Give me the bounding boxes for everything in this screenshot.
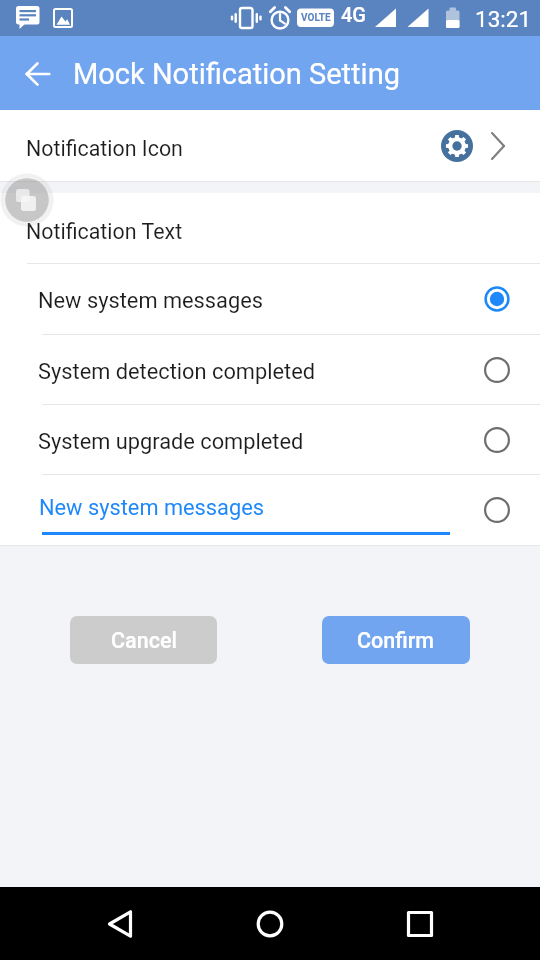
staticText: Notification Text bbox=[26, 219, 183, 244]
staticText: Confirm bbox=[357, 628, 435, 653]
button[interactable]: Home bbox=[240, 894, 300, 954]
button[interactable]: Floating assistant bbox=[0, 144, 83, 256]
button[interactable]: New system messages bbox=[0, 475, 540, 545]
staticText: Cancel bbox=[111, 628, 177, 653]
staticText: Notification Icon bbox=[26, 136, 183, 161]
button[interactable]: System detection completed bbox=[0, 335, 540, 404]
button[interactable]: Cancel bbox=[70, 616, 217, 664]
button[interactable]: Recent apps bbox=[390, 894, 450, 954]
staticText: System upgrade completed bbox=[38, 429, 304, 455]
staticText: 4G bbox=[341, 3, 366, 26]
button[interactable]: Confirm bbox=[322, 616, 470, 664]
button[interactable]: System upgrade completed bbox=[0, 405, 540, 474]
button[interactable]: New system messages bbox=[0, 264, 540, 334]
button[interactable]: Choose notification icon bbox=[433, 122, 481, 170]
staticText: Mock Notification Setting bbox=[73, 57, 400, 91]
staticText: VOLTE bbox=[301, 12, 331, 24]
staticText: 13:21 bbox=[475, 6, 532, 32]
button[interactable]: Notification Icon bbox=[0, 110, 540, 181]
staticText: New system messages bbox=[38, 288, 263, 314]
button[interactable]: Navigate up bbox=[10, 45, 66, 101]
staticText: System detection completed bbox=[38, 359, 316, 385]
staticText: New system messages bbox=[39, 495, 264, 521]
button[interactable]: Back bbox=[90, 894, 150, 954]
